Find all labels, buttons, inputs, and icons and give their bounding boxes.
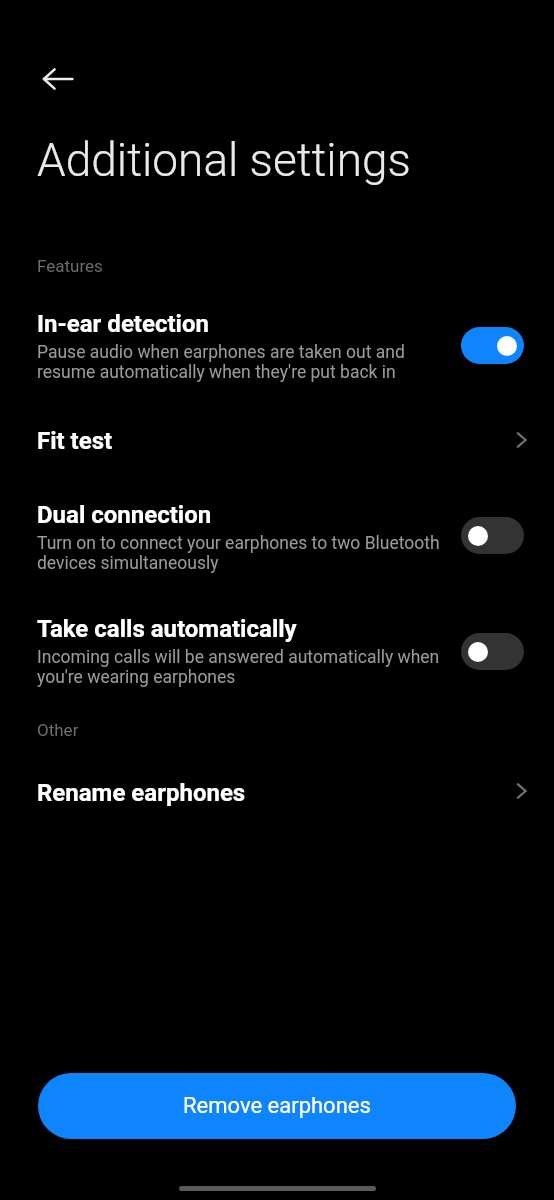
staticText: Incoming calls will be answered automati… xyxy=(37,647,449,687)
button[interactable]: Take calls automatically xyxy=(0,599,554,683)
staticText: Remove earphones xyxy=(183,1093,371,1119)
button[interactable]: Dual connection xyxy=(0,485,554,569)
button[interactable]: Turn off xyxy=(461,327,524,364)
staticText: In-ear detection xyxy=(37,310,209,338)
button[interactable]: Turn on xyxy=(461,633,524,670)
button[interactable]: Turn on xyxy=(461,517,524,554)
button[interactable]: Rename earphones xyxy=(0,763,554,813)
button[interactable]: Remove earphones xyxy=(38,1073,516,1139)
staticText: Other xyxy=(37,720,79,740)
staticText: Take calls automatically xyxy=(37,615,297,643)
button[interactable]: In-ear detection xyxy=(0,294,554,378)
staticText: Features xyxy=(37,256,103,276)
staticText: Fit test xyxy=(37,427,113,455)
button[interactable]: Back xyxy=(34,54,84,104)
staticText: Pause audio when earphones are taken out… xyxy=(37,342,449,382)
staticText: Turn on to connect your earphones to two… xyxy=(37,533,449,573)
staticText: Additional settings xyxy=(37,133,411,187)
staticText: Dual connection xyxy=(37,501,212,529)
staticText: Rename earphones xyxy=(37,779,246,807)
button[interactable]: Fit test xyxy=(0,411,554,461)
